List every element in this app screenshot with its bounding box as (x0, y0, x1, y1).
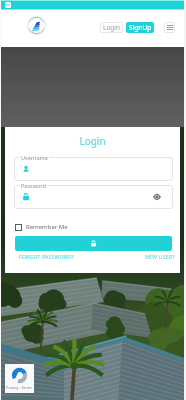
staticText: Remember Me (26, 223, 68, 231)
staticText: Login (5, 134, 180, 148)
button[interactable]: Login (15, 236, 172, 251)
button[interactable]: SignUp (126, 22, 154, 33)
button[interactable]: Menu (164, 22, 175, 33)
button[interactable]: Login (100, 22, 123, 33)
button[interactable]: Email (5, 2, 11, 8)
button[interactable]: NEW USER? (145, 254, 175, 261)
staticText: Password (21, 182, 46, 189)
staticText: Login (103, 23, 121, 32)
button[interactable]: reCAPTCHA (5, 364, 34, 393)
button[interactable]: Show password (153, 194, 161, 200)
staticText: Privacy - Terms (6, 385, 33, 390)
staticText: FORGOT PASSWORD? (19, 254, 74, 261)
staticText: NEW USER? (145, 254, 175, 261)
button[interactable]: Remember Me (15, 223, 68, 231)
staticText: Username (21, 154, 48, 161)
button[interactable]: FORGOT PASSWORD? (19, 254, 74, 261)
staticText: SignUp (129, 23, 152, 32)
